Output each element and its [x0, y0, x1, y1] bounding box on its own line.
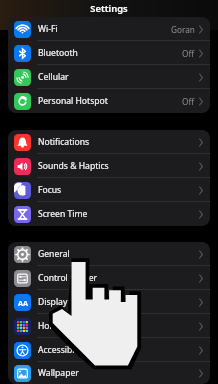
- staticText: General: [38, 248, 70, 260]
- staticText: Control Center: [38, 272, 98, 284]
- staticText: Screen Time: [38, 208, 88, 220]
- staticText: Off: [182, 96, 195, 107]
- staticText: Wi-Fi: [38, 23, 58, 35]
- button[interactable]: Wi-Fi: [8, 17, 210, 41]
- button[interactable]: General: [8, 242, 210, 266]
- button[interactable]: AA: [8, 290, 210, 314]
- button[interactable]: Control Center: [8, 266, 210, 290]
- button[interactable]: Accessibility: [8, 338, 210, 362]
- staticText: Cellular: [38, 71, 69, 83]
- button[interactable]: Screen Time: [8, 202, 210, 226]
- staticText: Bluetooth: [38, 47, 78, 59]
- button[interactable]: Wallpaper: [8, 362, 210, 384]
- staticText: Accessibility: [38, 344, 87, 356]
- staticText: Focus: [38, 184, 62, 196]
- staticText: Personal Hotspot: [38, 95, 108, 107]
- button[interactable]: Home Screen: [8, 314, 210, 338]
- button[interactable]: Personal Hotspot: [8, 89, 210, 113]
- staticText: Notifications: [38, 136, 90, 148]
- staticText: Off: [182, 48, 195, 59]
- staticText: Sounds & Haptics: [38, 160, 109, 172]
- button[interactable]: Sounds & Haptics: [8, 154, 210, 178]
- staticText: Home Screen: [38, 320, 92, 332]
- staticText: Wallpaper: [38, 367, 79, 379]
- button[interactable]: Notifications: [8, 130, 210, 154]
- staticText: AA: [18, 298, 28, 308]
- staticText: Goran: [171, 24, 195, 35]
- button[interactable]: Cellular: [8, 65, 210, 89]
- button[interactable]: Bluetooth: [8, 41, 210, 65]
- staticText: Display & Brightness: [38, 296, 122, 308]
- button[interactable]: Focus: [8, 178, 210, 202]
- staticText: Settings: [90, 2, 128, 15]
